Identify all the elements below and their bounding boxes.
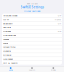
- staticText: Sounds: [3, 38, 9, 41]
- staticText: Profile: [51, 69, 56, 71]
- button[interactable]: Wallpaper: [2, 57, 62, 61]
- staticText: Cellular: [3, 26, 11, 29]
- staticText: Wallpaper: [3, 57, 13, 60]
- button[interactable]: Search: [21, 66, 43, 72]
- button[interactable]: Cellular: [2, 25, 62, 29]
- staticText: SwiftUI Settings: [20, 5, 43, 9]
- staticText: Screen Time: [3, 46, 15, 48]
- button[interactable]: Profile: [43, 66, 64, 72]
- staticText: Focus: [3, 42, 8, 44]
- button[interactable]: Sounds: [2, 37, 62, 41]
- button[interactable]: Siri & Search: [2, 61, 62, 65]
- button[interactable]: Airplane Mode: [2, 14, 62, 17]
- staticText: On: [58, 22, 61, 25]
- button[interactable]: Display: [2, 53, 62, 57]
- button[interactable]: Focus: [2, 41, 62, 45]
- button[interactable]: General: [2, 49, 62, 53]
- staticText: Home: [55, 18, 61, 21]
- staticText: Notifications: [3, 34, 16, 37]
- staticText: Airplane Mode: [3, 14, 17, 17]
- staticText: Off: [58, 14, 61, 17]
- button[interactable]: Screen Time: [2, 45, 62, 49]
- staticText: Display: [3, 53, 11, 56]
- staticText: General: [3, 49, 11, 52]
- staticText: Home: [9, 69, 13, 71]
- button[interactable]: Home: [0, 66, 21, 72]
- staticText: in your own app: [24, 9, 40, 12]
- staticText: Siri & Search: [3, 61, 17, 64]
- staticText: Off: [58, 30, 61, 33]
- button[interactable]: Bluetooth: [2, 21, 62, 25]
- staticText: Wi-Fi: [3, 18, 9, 21]
- button[interactable]: Notifications: [2, 33, 62, 37]
- staticText: How to use: [26, 2, 37, 5]
- staticText: Search: [29, 69, 35, 71]
- staticText: Hotspot: [3, 30, 11, 33]
- button[interactable]: Wi-Fi: [2, 17, 62, 21]
- staticText: Bluetooth: [3, 22, 12, 25]
- button[interactable]: Hotspot: [2, 29, 62, 33]
